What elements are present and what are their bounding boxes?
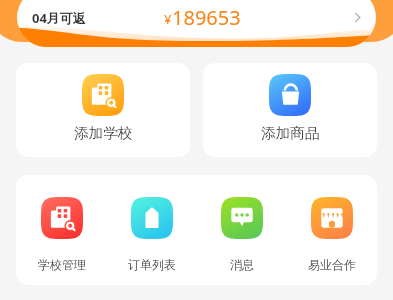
- staticText: 04月可返: [32, 9, 86, 27]
- button[interactable]: 04月可返: [17, 0, 376, 35]
- button[interactable]: 添加学校: [16, 63, 190, 157]
- staticText: ¥: [164, 10, 172, 28]
- staticText: 订单列表: [128, 257, 176, 272]
- staticText: 添加学校: [74, 124, 133, 142]
- button[interactable]: 易业合作: [287, 197, 377, 272]
- staticText: 添加商品: [261, 124, 320, 142]
- button[interactable]: 学校管理: [16, 197, 107, 272]
- staticText: 189653: [172, 4, 241, 31]
- button[interactable]: 添加商品: [203, 63, 377, 157]
- staticText: 消息: [230, 257, 254, 272]
- button[interactable]: 消息: [197, 197, 287, 272]
- button[interactable]: 订单列表: [107, 197, 197, 272]
- staticText: 学校管理: [38, 257, 86, 272]
- staticText: 易业合作: [308, 257, 356, 272]
- other: More: [351, 11, 364, 24]
